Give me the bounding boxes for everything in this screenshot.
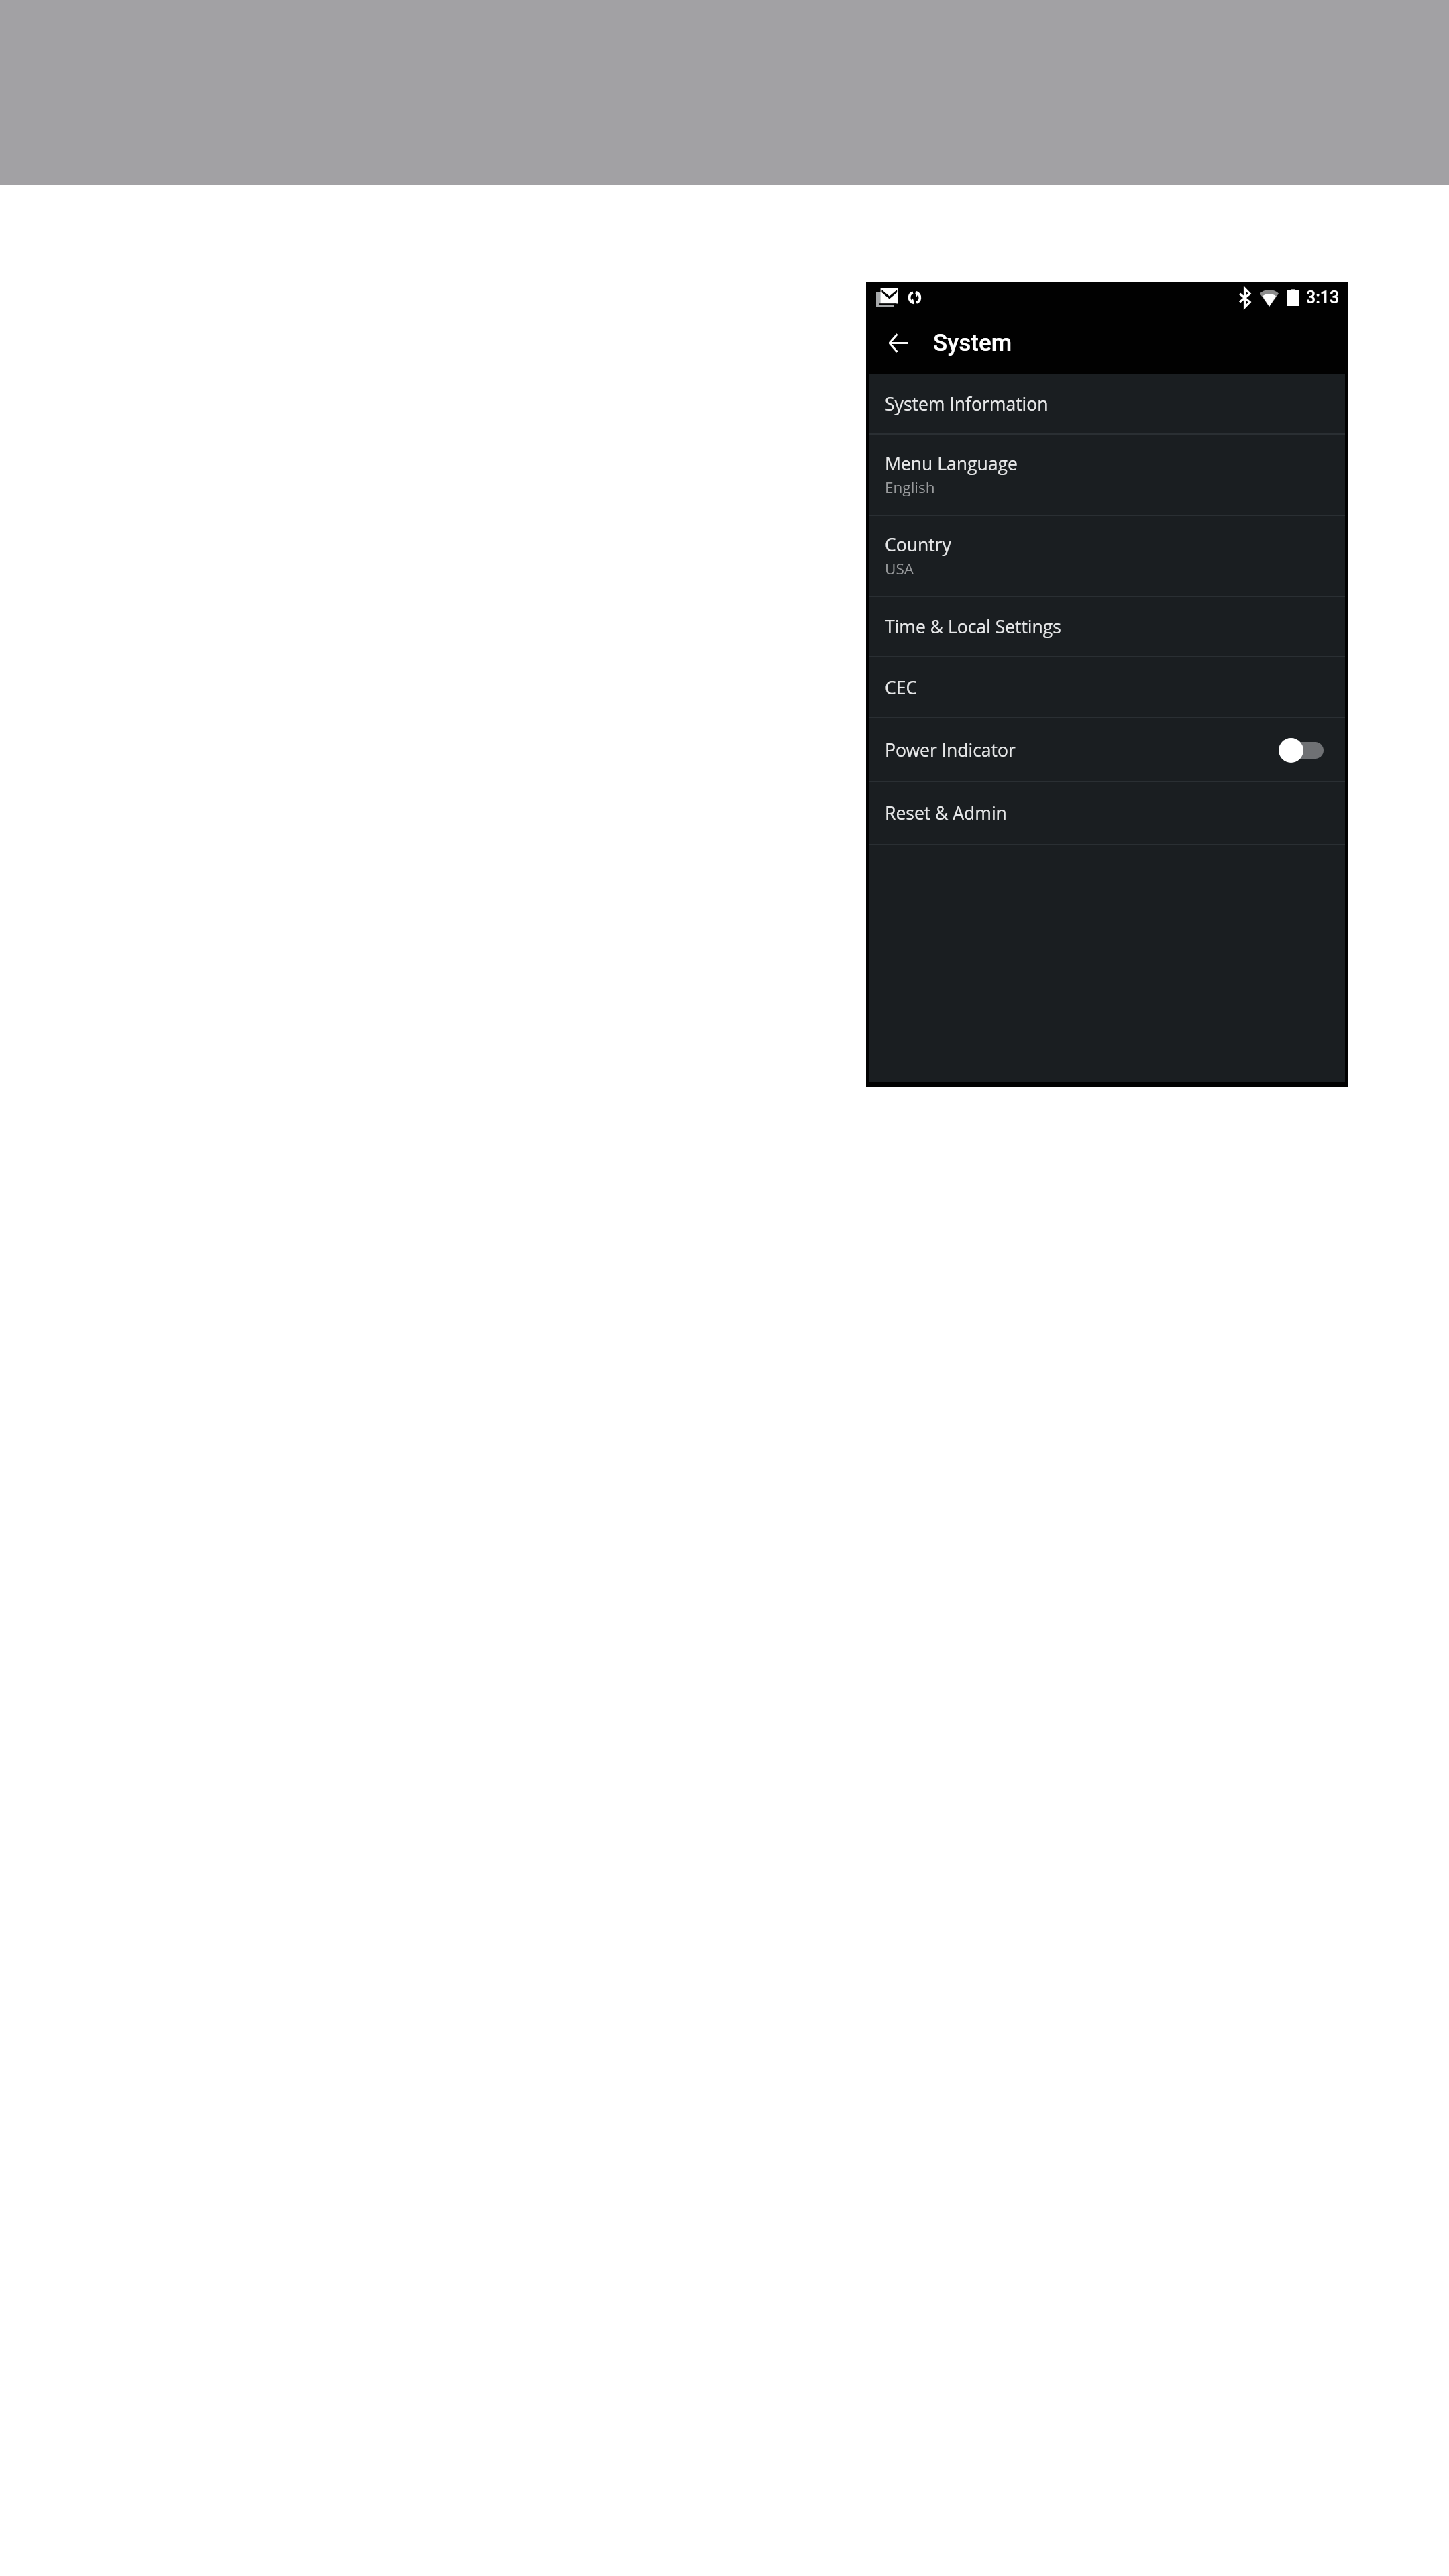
button[interactable]: Country xyxy=(869,516,1345,596)
staticText: Country xyxy=(885,533,951,557)
button[interactable]: Power Indicator xyxy=(869,718,1345,781)
button[interactable]: Reset & Admin xyxy=(869,782,1345,844)
button[interactable]: System Information xyxy=(869,374,1345,433)
staticText: Power Indicator xyxy=(885,738,1016,762)
button[interactable]: Menu Language xyxy=(869,435,1345,515)
staticText: 3:13 xyxy=(1306,288,1340,307)
staticText: System xyxy=(933,329,1012,357)
button[interactable]: Time & Local Settings xyxy=(869,597,1345,656)
staticText: Time & Local Settings xyxy=(885,614,1061,639)
staticText: USA xyxy=(885,558,914,579)
button[interactable]: Power Indicator toggle, off xyxy=(1279,737,1324,763)
button[interactable]: CEC xyxy=(869,657,1345,717)
staticText: Reset & Admin xyxy=(885,801,1007,825)
staticText: Menu Language xyxy=(885,451,1018,476)
staticText: System Information xyxy=(885,392,1049,416)
staticText: CEC xyxy=(885,676,918,700)
button[interactable]: Back xyxy=(882,327,914,359)
staticText: English xyxy=(885,477,935,498)
